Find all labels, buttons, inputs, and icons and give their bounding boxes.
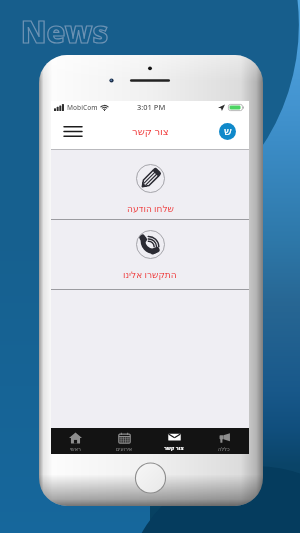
staticText: התקשרו אלינו	[123, 268, 177, 280]
button[interactable]: כללה	[199, 428, 249, 454]
staticText: ראשי	[70, 446, 81, 452]
staticText: MobiCom	[67, 103, 98, 112]
button[interactable]: צור קשר	[149, 428, 199, 454]
button[interactable]: Menu	[61, 119, 85, 143]
staticText: צור קשר	[132, 124, 169, 138]
button[interactable]: ראשי	[51, 428, 100, 454]
staticText: ש	[224, 125, 232, 138]
button[interactable]: Account	[219, 123, 236, 140]
staticText: צור קשר	[164, 445, 184, 452]
staticText: 3:01 PM	[137, 102, 166, 112]
button[interactable]: אירועים	[100, 428, 149, 454]
staticText: כללה	[218, 446, 230, 452]
button[interactable]: שלחו הודעה	[51, 150, 249, 219]
staticText: אירועים	[116, 446, 133, 452]
button[interactable]: התקשרו אלינו	[51, 220, 249, 289]
staticText: שלחו הודעה	[127, 202, 174, 214]
